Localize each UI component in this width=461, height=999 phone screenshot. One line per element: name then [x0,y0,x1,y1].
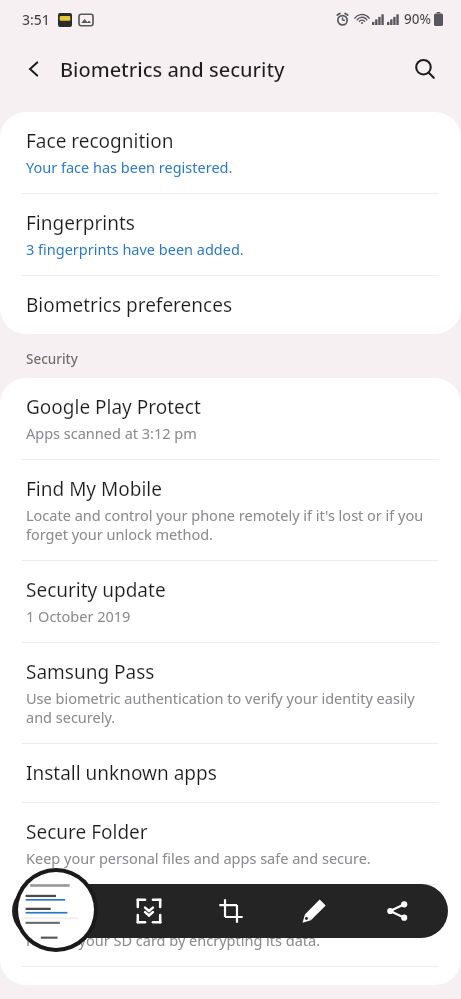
staticText: Install unknown apps [26,760,217,786]
staticText: Find My Mobile [26,476,162,502]
staticText: Security update [26,577,166,603]
button[interactable]: Scroll capture [108,884,190,938]
staticText: Biometrics and security [60,56,285,83]
staticText: Locate and control your phone remotely i… [26,505,435,544]
staticText: Biometrics preferences [26,292,232,318]
staticText: 90% [404,10,431,28]
staticText: Secure Folder [26,819,148,845]
button[interactable]: Samsung Pass [0,643,461,743]
staticText: 3 fingerprints have been added. [26,239,244,259]
button[interactable]: Back [14,49,54,89]
staticText: Google Play Protect [26,394,201,420]
staticText: 1 October 2019 [26,606,131,626]
button[interactable]: Share [355,884,438,938]
staticText: Encrypt SD card [26,901,167,927]
button[interactable]: Screenshot preview [14,868,98,952]
button[interactable]: Crop [190,884,272,938]
button[interactable]: Biometrics preferences [0,276,461,334]
button[interactable]: Face recognition [0,112,461,193]
staticText: Samsung Pass [26,659,155,685]
staticText: Use biometric authentication to verify y… [26,688,435,727]
button[interactable]: Find My Mobile [0,460,461,560]
staticText: Face recognition [26,128,174,154]
button[interactable]: Draw [272,884,355,938]
staticText: Security [26,350,78,368]
button[interactable]: Encrypt SD card [0,885,461,966]
staticText: Apps scanned at 3:12 pm [26,423,197,443]
button[interactable]: Google Play Protect [0,378,461,459]
staticText: 3:51 [22,10,50,29]
staticText: Fingerprints [26,210,135,236]
button[interactable]: Install unknown apps [0,744,461,802]
staticText: Protect your SD card by encrypting its d… [26,930,321,950]
button[interactable]: Search [403,47,447,91]
staticText: Your face has been registered. [26,157,233,177]
button[interactable]: Security update [0,561,461,642]
button[interactable]: Secure Folder [0,803,461,884]
button[interactable]: Fingerprints [0,194,461,275]
staticText: Keep your personal files and apps safe a… [26,848,371,868]
